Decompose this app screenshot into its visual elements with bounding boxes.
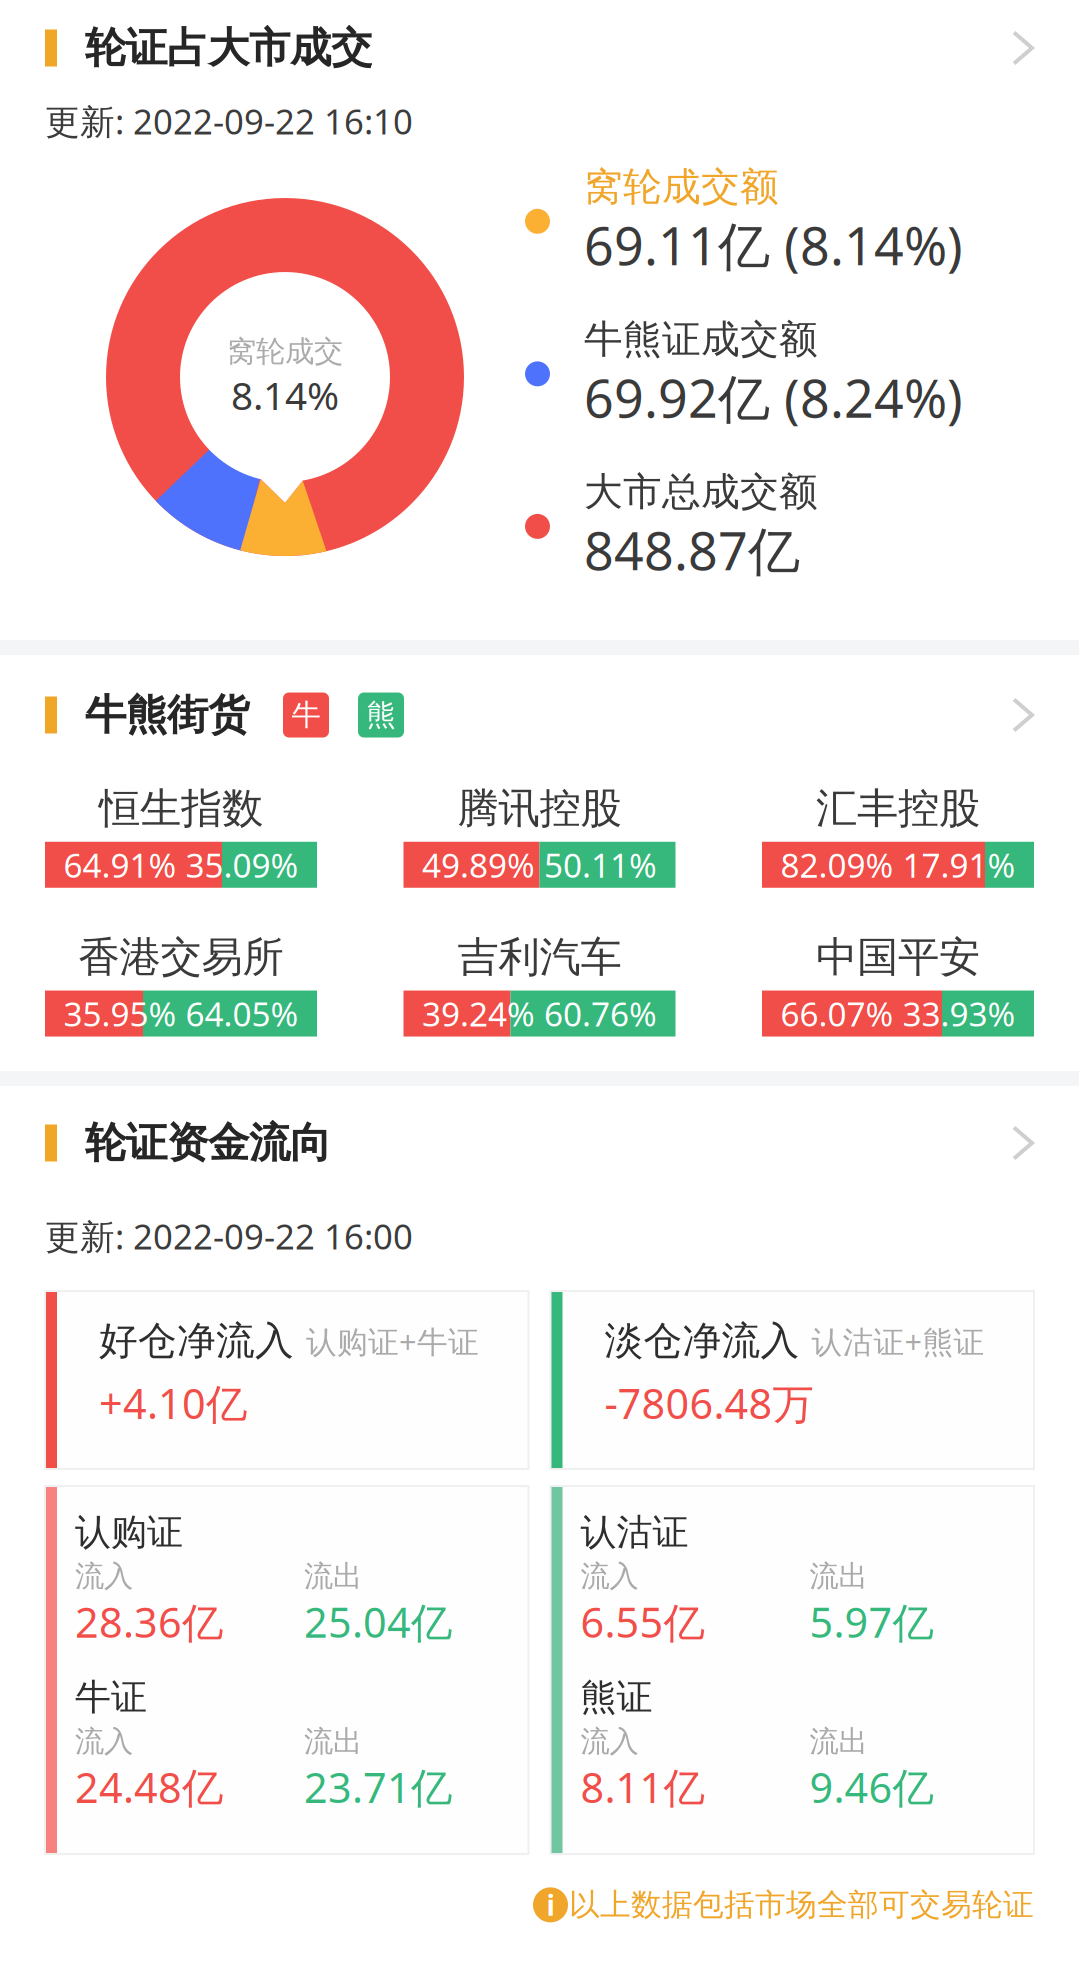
staticText: 牛熊证成交额 <box>584 316 818 363</box>
staticText: 认沽证+熊证 <box>811 1321 984 1361</box>
staticText: 认沽证 <box>580 1510 688 1554</box>
staticText: 更新: 2022-09-22 16:00 <box>45 1213 413 1259</box>
staticText: 流出 <box>809 1723 867 1759</box>
staticText: 更新: 2022-09-22 16:10 <box>45 98 413 144</box>
staticText: 24.48亿 <box>75 1759 223 1814</box>
staticText: 流入 <box>75 1558 133 1594</box>
staticText: 流出 <box>304 1723 362 1759</box>
staticText: 848.87亿 <box>584 516 800 585</box>
staticText: 69.11亿 (8.14%) <box>584 210 963 280</box>
staticText: 25.04亿 <box>304 1594 452 1649</box>
staticText: 8.11亿 <box>580 1759 704 1814</box>
staticText: 66.07% 33.93% <box>780 991 1015 1036</box>
staticText: 35.95% 64.05% <box>63 991 298 1036</box>
staticText: 8.14% <box>231 369 339 421</box>
staticText: i <box>546 1886 554 1923</box>
staticText: 49.89% 50.11% <box>422 843 657 887</box>
staticText: 熊证 <box>580 1675 652 1719</box>
staticText: 牛 <box>291 697 320 733</box>
staticText: 牛熊街货 <box>85 690 249 740</box>
staticText: 82.09% 17.91% <box>780 843 1015 887</box>
staticText: 汇丰控股 <box>816 783 980 834</box>
staticText: 窝轮成交额 <box>584 163 779 210</box>
staticText: 吉利汽车 <box>457 932 621 983</box>
staticText: -7806.48万 <box>604 1375 813 1430</box>
staticText: 39.24% 60.76% <box>422 991 657 1036</box>
staticText: 腾讯控股 <box>457 783 621 834</box>
staticText: 熊 <box>366 697 395 733</box>
staticText: 流入 <box>580 1723 638 1759</box>
staticText: 28.36亿 <box>75 1594 223 1649</box>
staticText: 中国平安 <box>816 932 980 983</box>
staticText: 23.71亿 <box>304 1759 452 1814</box>
staticText: +4.10亿 <box>99 1375 247 1430</box>
staticText: 流入 <box>580 1558 638 1594</box>
staticText: 香港交易所 <box>78 932 283 983</box>
staticText: 淡仓净流入 <box>604 1317 799 1364</box>
staticText: 69.92亿 (8.24%) <box>584 363 963 432</box>
staticText: 5.97亿 <box>809 1594 933 1649</box>
staticText: 轮证资金流向 <box>85 1118 331 1168</box>
staticText: 轮证占大市成交 <box>85 23 372 73</box>
staticText: 64.91% 35.09% <box>63 843 298 887</box>
staticText: 流出 <box>809 1558 867 1594</box>
staticText: 认购证 <box>75 1510 183 1554</box>
staticText: 恒生指数 <box>99 783 263 834</box>
staticText: 好仓净流入 <box>99 1317 294 1364</box>
staticText: 流出 <box>304 1558 362 1594</box>
staticText: 大市总成交额 <box>584 468 818 516</box>
staticText: 以上数据包括市场全部可交易轮证 <box>569 1886 1034 1924</box>
button[interactable]: 轮证占大市成交 <box>1012 30 1034 65</box>
button[interactable]: 牛熊街货 <box>1012 697 1034 732</box>
staticText: 流入 <box>75 1723 133 1759</box>
staticText: 认购证+牛证 <box>306 1321 479 1361</box>
staticText: 9.46亿 <box>809 1759 933 1814</box>
staticText: 牛证 <box>75 1675 147 1719</box>
button[interactable]: 轮证资金流向 <box>1012 1125 1034 1160</box>
staticText: 窝轮成交 <box>227 333 343 369</box>
staticText: 6.55亿 <box>580 1594 704 1649</box>
